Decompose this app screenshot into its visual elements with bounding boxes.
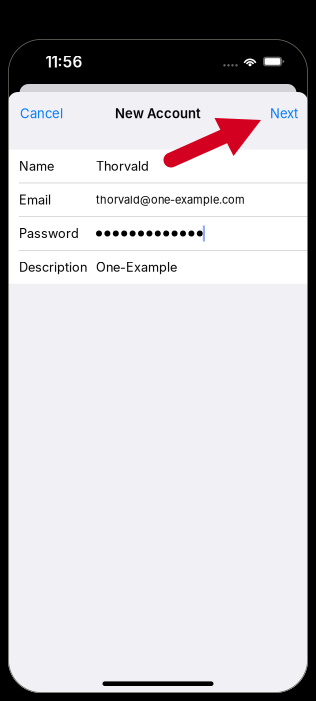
- button[interactable]: Next: [260, 93, 308, 133]
- staticText: Next: [270, 106, 298, 121]
- staticText: Email: [19, 192, 51, 207]
- staticText: Password: [19, 226, 79, 241]
- button[interactable]: Cancel: [8, 93, 75, 133]
- staticText: Name: [19, 158, 54, 174]
- staticText: One-Example: [96, 259, 177, 275]
- staticText: Thorvald: [96, 158, 149, 174]
- staticText: Cancel: [20, 106, 63, 121]
- staticText: thorvald@one-example.com: [96, 193, 245, 206]
- staticText: Description: [19, 259, 87, 275]
- staticText: New Account: [115, 106, 201, 121]
- staticText: 11:56: [45, 53, 82, 71]
